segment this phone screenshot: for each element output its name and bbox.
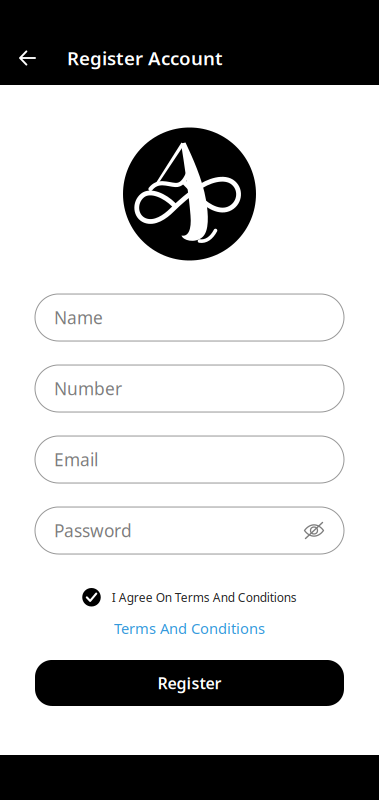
button[interactable]: Terms And Conditions (114, 618, 265, 638)
staticText: Number (54, 377, 122, 400)
staticText: I Agree On Terms And Conditions (112, 589, 297, 605)
button[interactable]: I Agree On Terms And Conditions (82, 588, 297, 606)
button[interactable]: Back (9, 36, 46, 80)
staticText: Password (54, 519, 132, 542)
staticText: Email (54, 448, 98, 471)
staticText: Register Account (67, 46, 223, 70)
staticText: Register (157, 672, 221, 694)
staticText: Name (54, 306, 103, 329)
button[interactable]: Register (35, 660, 344, 706)
staticText: Terms And Conditions (114, 618, 265, 638)
